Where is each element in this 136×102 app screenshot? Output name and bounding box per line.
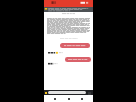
button[interactable]: More info	[48, 62, 62, 66]
button[interactable]	[65, 57, 91, 62]
button[interactable]: Cookie notice	[44, 7, 93, 12]
button[interactable]: Recent apps	[79, 96, 85, 102]
button[interactable]: Back	[52, 96, 58, 102]
button[interactable]: Address bar	[48, 91, 86, 94]
button[interactable]: Settings	[48, 51, 64, 55]
button[interactable]: Home	[66, 96, 72, 102]
button[interactable]	[60, 43, 90, 48]
